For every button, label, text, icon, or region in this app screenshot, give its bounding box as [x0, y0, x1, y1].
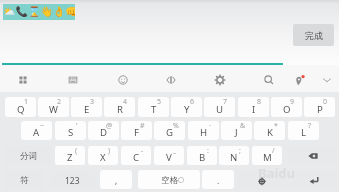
staticText: , — [115, 175, 118, 187]
staticText: T — [151, 103, 157, 116]
button[interactable]: F — [121, 121, 152, 140]
button[interactable]: I — [238, 97, 269, 117]
button[interactable]: Keyboard layouts — [11, 68, 35, 92]
staticText: 1 — [24, 97, 29, 107]
staticText: 5 — [157, 97, 162, 107]
staticText: G — [166, 126, 173, 139]
button[interactable]: Y — [171, 97, 202, 117]
staticText: · — [209, 121, 211, 131]
staticText: F — [134, 126, 139, 139]
staticText: ⛅📞⌛👋👌👊 — [3, 6, 75, 18]
button[interactable]: J — [221, 121, 252, 140]
button[interactable]: 分词 — [5, 146, 52, 165]
staticText: N — [230, 151, 238, 164]
button[interactable]: 完成 — [293, 24, 334, 46]
button[interactable]: D — [88, 121, 119, 140]
staticText: K — [267, 126, 273, 139]
staticText: U — [216, 103, 224, 116]
button[interactable]: W — [38, 97, 69, 117]
staticText: R — [117, 103, 123, 116]
staticText: % — [173, 121, 179, 131]
staticText: 0 — [323, 97, 328, 107]
staticText: - — [141, 146, 144, 156]
button[interactable]: P — [304, 97, 335, 117]
staticText: 123 — [65, 175, 80, 187]
button[interactable]: Z — [55, 146, 85, 165]
button[interactable]: L — [288, 121, 319, 140]
staticText: ; — [239, 146, 241, 156]
staticText: ' — [76, 121, 78, 131]
button[interactable]: , — [100, 170, 132, 189]
button[interactable]: Q — [5, 97, 36, 117]
button[interactable]: 符 — [4, 170, 45, 189]
staticText: Y — [184, 103, 190, 116]
staticText: W — [49, 103, 58, 116]
button[interactable]: V — [154, 146, 184, 165]
staticText: 空格 — [161, 175, 178, 186]
staticText: # — [140, 121, 145, 131]
staticText: 8 — [257, 97, 262, 107]
staticText: @ — [106, 121, 113, 131]
staticText: I — [252, 103, 256, 116]
staticText: A — [33, 126, 40, 139]
staticText: 9 — [290, 97, 295, 107]
button[interactable]: O — [271, 97, 302, 117]
button[interactable]: R — [104, 97, 135, 117]
staticText: P — [317, 103, 323, 116]
staticText: L — [301, 126, 307, 139]
button[interactable]: 空格 — [138, 170, 200, 189]
button[interactable]: Move cursor — [159, 68, 183, 92]
button[interactable]: A — [21, 121, 52, 140]
staticText: S — [68, 126, 74, 139]
button[interactable]: B — [187, 146, 217, 165]
staticText: ) — [108, 146, 111, 156]
button[interactable]: U — [204, 97, 235, 117]
staticText: ~ — [40, 121, 45, 131]
staticText: ? — [308, 121, 312, 131]
button[interactable]: X — [88, 146, 118, 165]
staticText: 分词 — [20, 151, 37, 162]
button[interactable]: E — [71, 97, 102, 117]
button[interactable]: Backspace — [288, 146, 337, 165]
button[interactable]: Switch input language — [238, 170, 286, 189]
button[interactable]: C — [121, 146, 151, 165]
button[interactable]: K — [254, 121, 285, 140]
staticText: : — [207, 146, 209, 156]
staticText: ( — [75, 146, 78, 156]
button[interactable]: H — [188, 121, 219, 140]
staticText: V — [166, 151, 172, 164]
button[interactable]: 123 — [50, 170, 95, 189]
staticText: * — [274, 121, 278, 131]
staticText: J — [235, 126, 238, 139]
staticText: Z — [67, 151, 73, 164]
staticText: Baidu — [258, 164, 295, 182]
button[interactable]: T — [138, 97, 169, 117]
staticText: 3 — [90, 97, 95, 107]
staticText: & — [240, 121, 246, 131]
button[interactable]: Number keypad — [61, 68, 85, 92]
staticText: X — [100, 151, 106, 164]
staticText: H — [200, 126, 208, 139]
staticText: 符 — [20, 175, 29, 186]
button[interactable]: Composing emoji — [3, 4, 75, 20]
button[interactable]: S — [55, 121, 86, 140]
staticText: 2 — [57, 97, 62, 107]
staticText: C — [133, 151, 140, 164]
staticText: / — [272, 146, 275, 156]
button[interactable]: Emoji — [111, 68, 135, 92]
staticText: . — [217, 175, 220, 187]
button[interactable]: Search — [257, 68, 281, 92]
button[interactable]: N — [219, 146, 249, 165]
staticText: Q — [17, 103, 25, 116]
button[interactable]: . — [202, 170, 234, 189]
button[interactable]: Enter — [290, 170, 337, 189]
staticText: B — [199, 151, 206, 164]
button[interactable]: G — [154, 121, 185, 140]
button[interactable]: Collapse keyboard — [315, 68, 339, 92]
button[interactable]: Settings — [208, 68, 232, 92]
staticText: 6 — [190, 97, 195, 107]
button[interactable]: Location — [287, 68, 311, 92]
staticText: 完成 — [305, 30, 323, 41]
button[interactable]: M — [252, 146, 282, 165]
staticText: D — [100, 126, 108, 139]
